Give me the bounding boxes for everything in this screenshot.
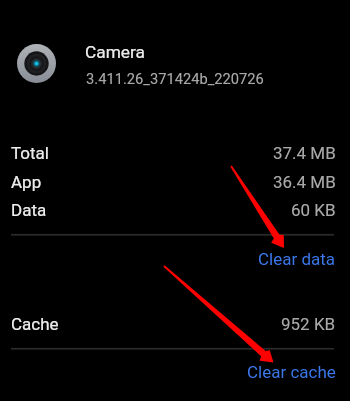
staticText: 36.4 MB [273,172,336,192]
staticText: 60 KB [291,200,336,220]
button[interactable]: Cache [0,314,350,334]
button[interactable]: App [0,172,350,192]
button[interactable]: Data [0,200,350,220]
staticText: Clear cache [247,362,336,382]
staticText: 3.411.26_371424b_220726 [86,70,264,87]
staticText: App [11,172,42,192]
staticText: Clear data [258,249,336,269]
staticText: 952 KB [281,314,336,334]
staticText: Total [11,143,49,163]
other: Camera app icon [17,44,56,83]
button[interactable]: Total [0,143,350,163]
button[interactable]: Camera app icon [0,0,350,110]
staticText: 37.4 MB [273,143,336,163]
staticText: Camera [85,42,145,62]
staticText: Cache [11,314,59,334]
button[interactable]: Clear cache [0,360,350,384]
staticText: Data [11,200,47,220]
button[interactable]: Clear data [0,247,350,271]
